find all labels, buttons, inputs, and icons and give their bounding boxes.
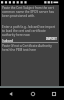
staticText: Enter a path (e.g. /sdcard) we import to… (2, 25, 58, 37)
button[interactable]: Back (0, 88, 22, 100)
staticText: IMPORT (46, 37, 57, 41)
staticText: /sdcard (2, 39, 58, 43)
staticText: Paste the Cert Subject from the cert com… (2, 6, 58, 18)
button[interactable]: IMPORT (45, 36, 58, 42)
button[interactable]: Recents (43, 88, 64, 100)
staticText: Paste (if not a Certificate Authority he… (2, 44, 58, 52)
button[interactable]: Home (22, 88, 43, 100)
